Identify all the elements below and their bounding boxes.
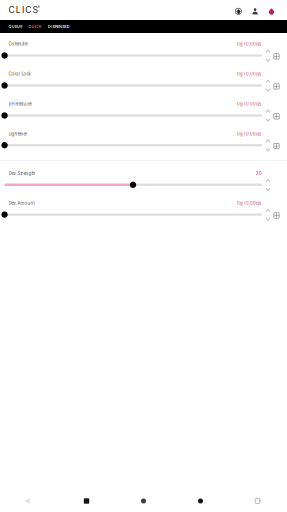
staticText: 0g (0.00oz) xyxy=(237,201,262,206)
staticText: Color Lock xyxy=(8,71,30,77)
button[interactable]: QUICK xyxy=(28,20,42,33)
button[interactable]: DISPENSED xyxy=(48,20,70,33)
button[interactable]: Adjust pH Reducer xyxy=(264,110,273,122)
button[interactable]: Adjust Lightener xyxy=(264,139,273,151)
button[interactable]: Enter pH Reducer amount xyxy=(272,112,281,121)
button[interactable]: Adjust Dev. Strength xyxy=(264,179,273,191)
button[interactable]: Assistant xyxy=(172,490,229,512)
button[interactable]: Language xyxy=(235,7,242,15)
staticText: 0g (0.00oz) xyxy=(237,71,262,76)
staticText: 0g (0.00oz) xyxy=(237,41,262,46)
staticText: Dev. Amount xyxy=(8,201,34,206)
button[interactable]: Enter Lightener amount xyxy=(272,142,281,151)
staticText: 20 xyxy=(256,171,262,176)
staticText: 0g (0.00oz) xyxy=(237,101,262,106)
staticText: 0g (0.00oz) xyxy=(237,131,262,136)
button[interactable]: Enter Collender amount xyxy=(272,52,281,61)
button[interactable]: Cast screen xyxy=(229,490,286,512)
staticText: Dev. Strength xyxy=(8,171,35,176)
button[interactable]: Color tools xyxy=(269,7,275,15)
button[interactable]: Adjust Dev. Amount xyxy=(264,209,273,221)
button[interactable]: Enter Dev. Amount amount xyxy=(272,211,281,220)
button[interactable]: Adjust Collender xyxy=(264,50,273,62)
staticText: DISPENSED xyxy=(48,24,70,29)
button[interactable]: Recent apps xyxy=(58,490,115,512)
staticText: CLICS xyxy=(8,5,37,15)
button[interactable]: QUEUE xyxy=(8,20,22,33)
staticText: pH Reducer xyxy=(8,101,32,107)
button[interactable]: Enter Color Lock amount xyxy=(272,82,281,91)
staticText: QUICK xyxy=(28,24,42,29)
button[interactable]: Back xyxy=(1,490,58,512)
button[interactable]: Home xyxy=(115,490,172,512)
staticText: ® xyxy=(37,5,39,9)
button[interactable]: Account xyxy=(252,7,258,15)
staticText: Collender xyxy=(8,41,28,47)
staticText: Lightener xyxy=(8,131,27,137)
staticText: QUEUE xyxy=(8,24,22,29)
button[interactable]: Adjust Color Lock xyxy=(264,80,273,92)
